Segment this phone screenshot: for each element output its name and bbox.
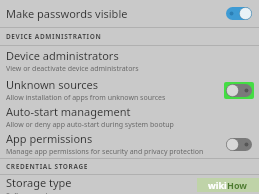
button[interactable]: Device administrators (0, 46, 259, 76)
staticText: wiki (208, 179, 227, 191)
staticText: CREDENTIAL STORAGE (6, 162, 88, 171)
staticText: App permissions (6, 131, 93, 146)
staticText: Unknown sources (6, 77, 99, 92)
staticText: Software only (6, 191, 51, 194)
button[interactable]: Make passwords visible (0, 0, 259, 27)
staticText: View or deactivate device administrators (6, 64, 139, 74)
staticText: Device administrators (6, 48, 119, 63)
staticText: Make passwords visible (6, 6, 128, 21)
staticText: Manage app permissions for security and … (6, 147, 204, 157)
staticText: How (227, 179, 248, 191)
button[interactable]: Unknown sources toggle (224, 82, 254, 99)
staticText: DEVICE ADMINISTRATION (6, 32, 102, 41)
staticText: Auto-start management (6, 104, 131, 119)
button[interactable]: App permissions (0, 130, 259, 158)
button[interactable]: Make passwords visible toggle (224, 5, 254, 22)
button[interactable]: App permissions toggle (224, 136, 254, 153)
button[interactable]: Auto-start management (0, 104, 259, 130)
staticText: Allow installation of apps from unknown … (6, 93, 166, 103)
button[interactable]: Unknown sources (0, 76, 259, 104)
staticText: Allow or deny app auto-start during syst… (6, 120, 174, 130)
button[interactable]: Storage type (0, 175, 259, 194)
staticText: Storage type (6, 175, 72, 190)
